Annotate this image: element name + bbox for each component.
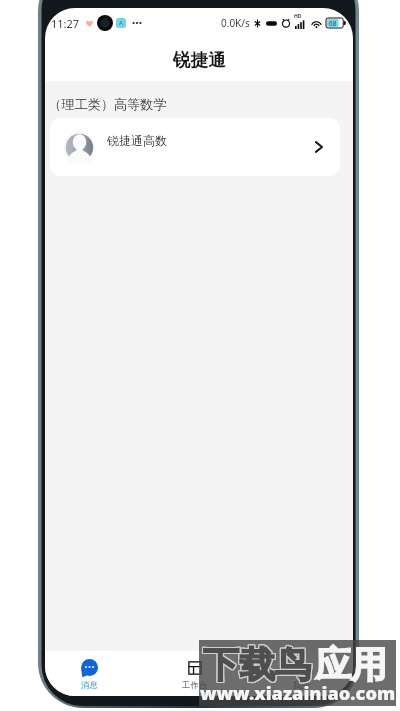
staticText: 锐捷通 <box>173 49 226 71</box>
staticText: 消息 <box>81 680 98 691</box>
staticText: 下载鸟 <box>202 641 310 686</box>
staticText: 下载鸟 <box>202 642 310 687</box>
staticText: www.xiazainiao.com <box>200 681 396 706</box>
staticText: 下载鸟 <box>204 642 312 687</box>
staticText: 我的 <box>293 680 310 691</box>
staticText: 工作台 <box>182 680 208 691</box>
button[interactable]: 消息 <box>45 651 142 696</box>
staticText: 下载鸟 <box>202 643 310 688</box>
staticText: 0.0K/s <box>221 16 250 30</box>
staticText: 应用 <box>315 642 387 687</box>
staticText: 下载鸟 <box>203 643 311 688</box>
staticText: 68 <box>329 19 337 28</box>
staticText: （理工类）高等数学 <box>48 96 167 113</box>
button[interactable]: 我的 <box>248 651 353 696</box>
staticText: 下载鸟 <box>203 642 311 687</box>
staticText: A <box>119 19 123 27</box>
button[interactable]: 锐捷通高数 <box>50 118 340 176</box>
staticText: HD <box>294 13 302 20</box>
staticText: 下载鸟 <box>203 641 311 686</box>
staticText: 11:27 <box>51 16 80 31</box>
staticText: 锐捷通高数 <box>107 133 167 148</box>
button[interactable]: 工作台 <box>142 651 248 696</box>
staticText: 下载鸟 <box>204 643 312 688</box>
staticText: 下载鸟 <box>204 641 312 686</box>
